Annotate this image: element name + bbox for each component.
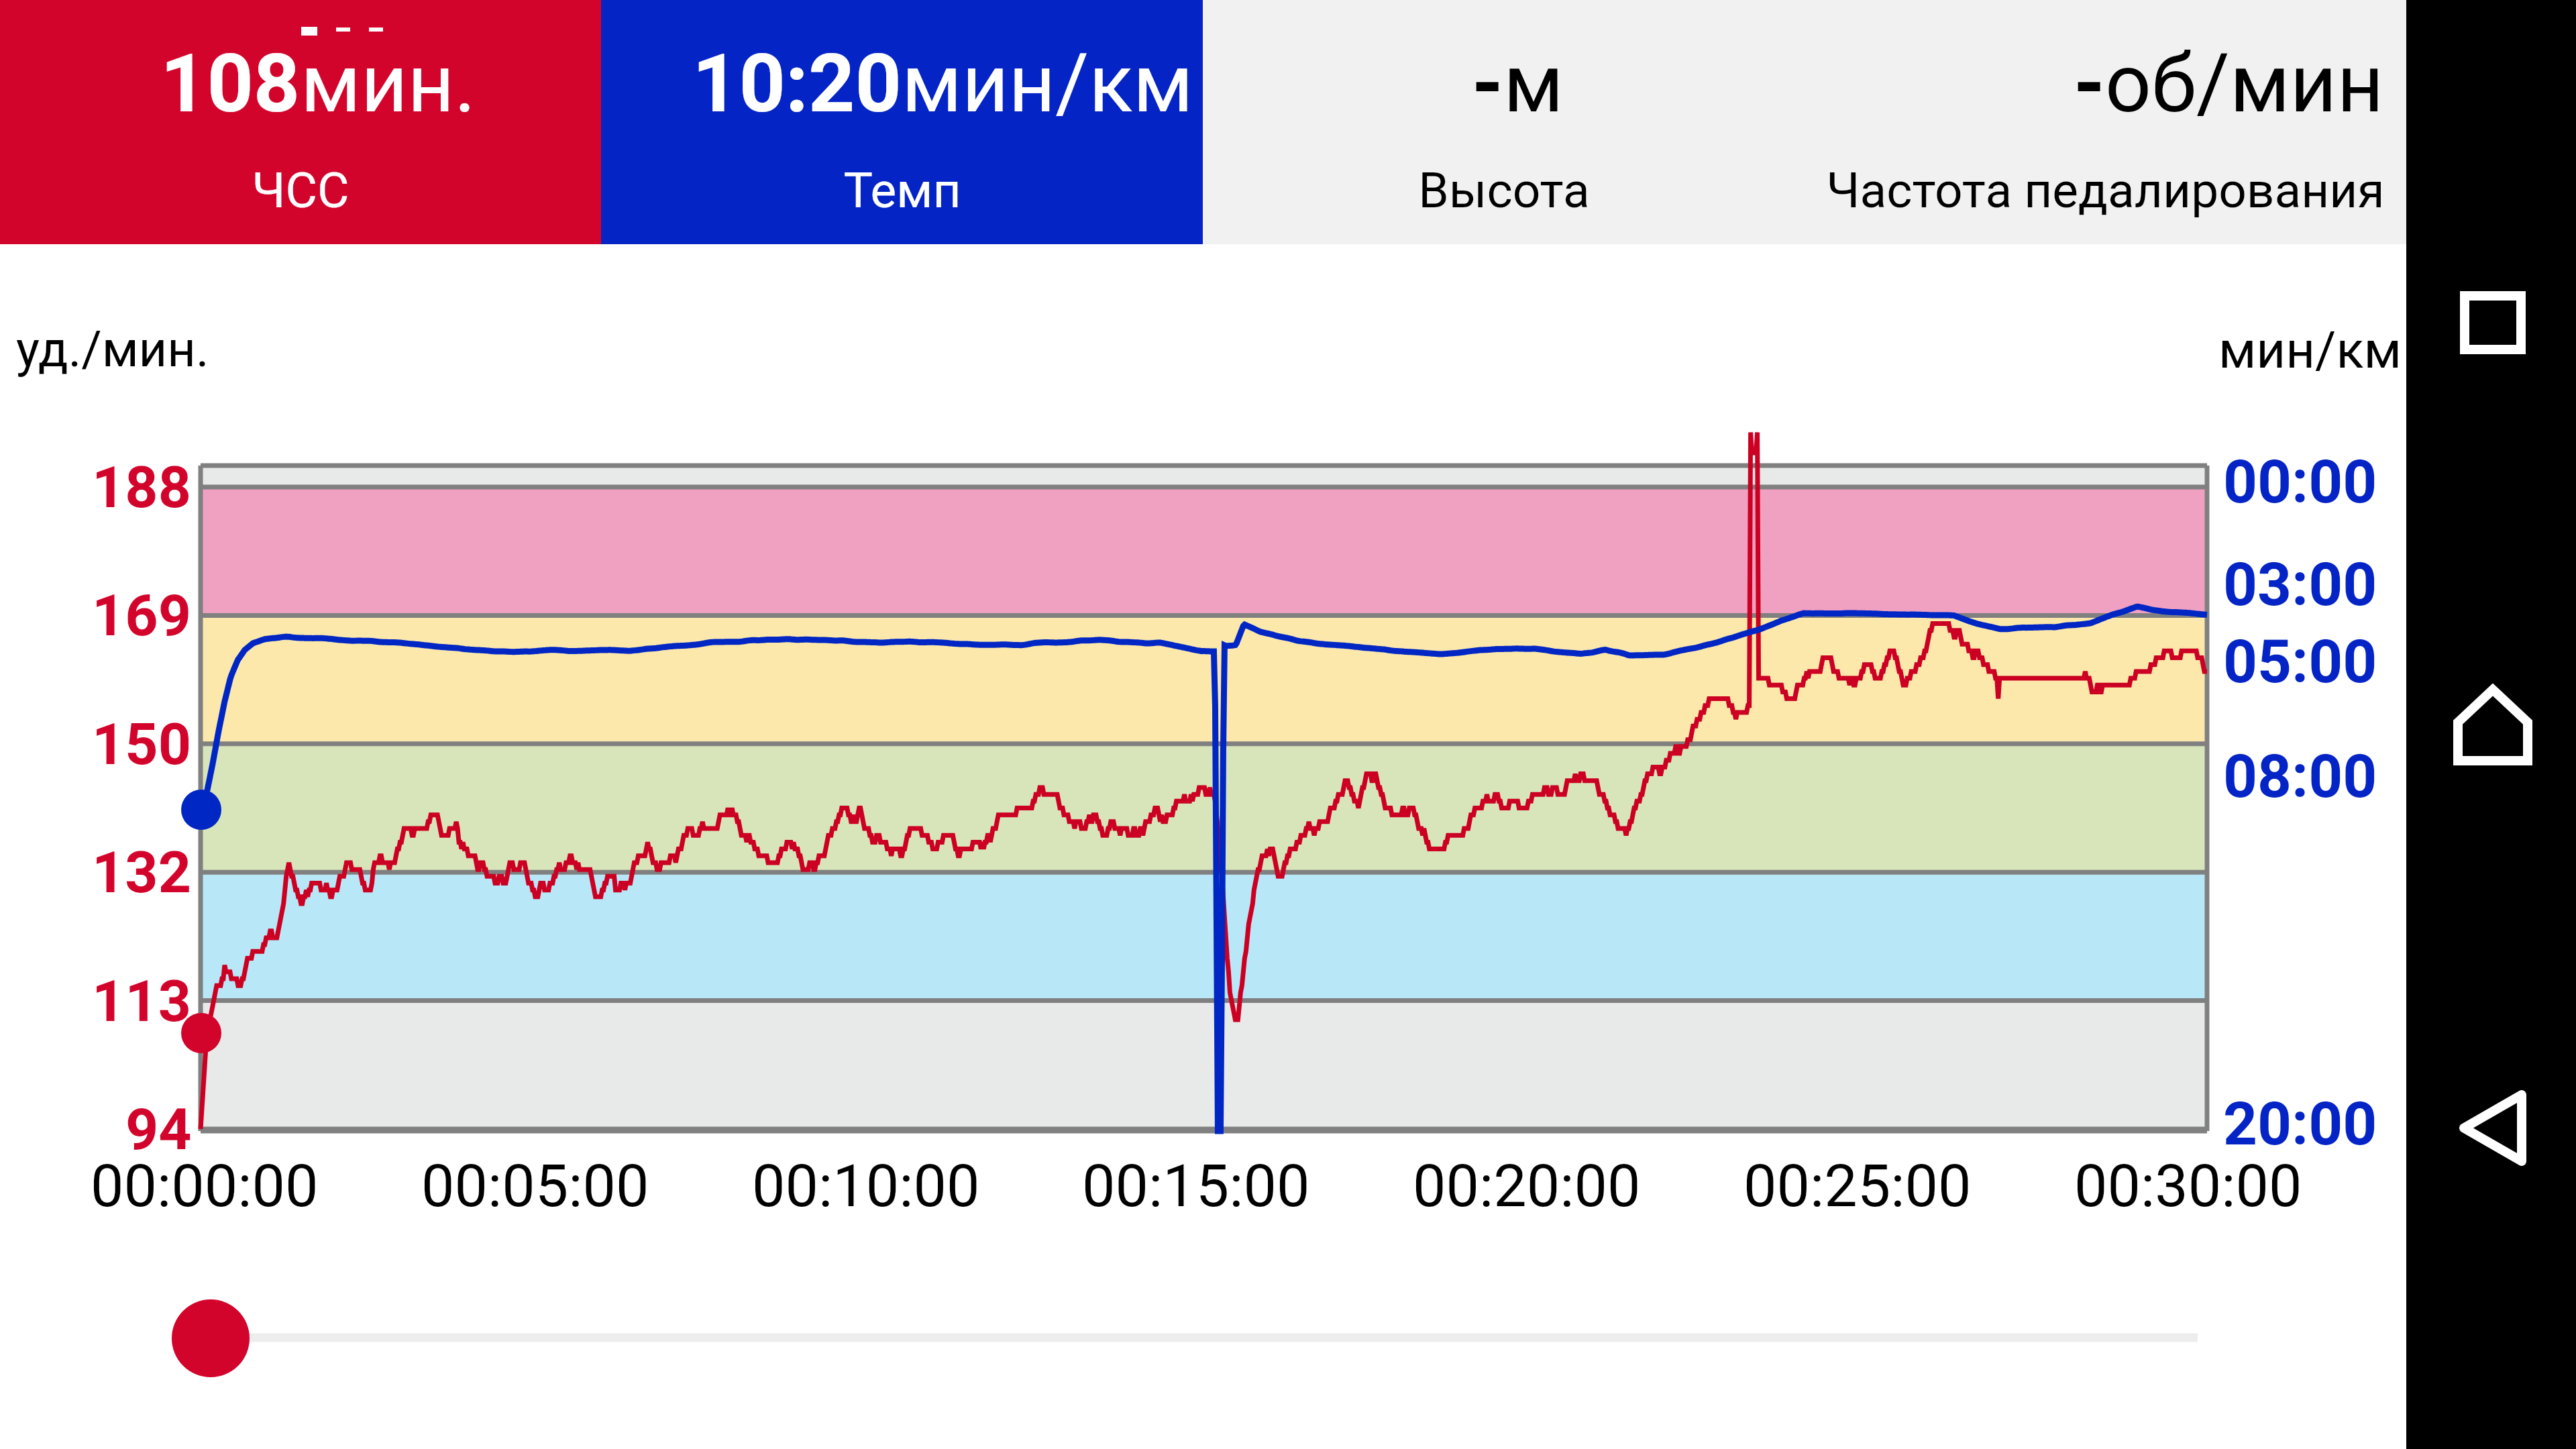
staticText: мин/км xyxy=(2218,320,2402,380)
staticText: 113 xyxy=(92,967,192,1035)
staticText: 00:00:00 xyxy=(91,1151,319,1220)
button[interactable]: Recents xyxy=(2429,259,2557,386)
staticText: 94 xyxy=(125,1095,192,1163)
staticText: 132 xyxy=(92,839,192,906)
staticText: 169 xyxy=(92,582,192,649)
staticText: 00:30:00 xyxy=(2074,1151,2302,1220)
staticText: м xyxy=(1503,36,1564,131)
staticText: мин. xyxy=(301,36,476,131)
staticText: 108 xyxy=(160,36,301,131)
staticText: Высота xyxy=(1418,162,1590,219)
staticText: 188 xyxy=(92,453,192,521)
staticText: 20:00 xyxy=(2223,1089,2377,1159)
staticText: 00:10:00 xyxy=(752,1151,980,1220)
staticText: Частота педалирования xyxy=(1826,162,2385,219)
staticText: ЧСС xyxy=(252,162,350,219)
staticText: об/мин xyxy=(2105,36,2384,131)
button[interactable]: 10:20 xyxy=(601,0,1203,244)
staticText: - xyxy=(2074,36,2105,131)
staticText: 00:20:00 xyxy=(1413,1151,1641,1220)
staticText: 150 xyxy=(92,710,192,778)
staticText: 00:15:00 xyxy=(1082,1151,1310,1220)
staticText: - xyxy=(1472,36,1503,131)
staticText: 10:20 xyxy=(692,36,902,131)
staticText: Темп xyxy=(843,162,961,219)
button[interactable]: - xyxy=(1203,0,1805,244)
staticText: мин/км xyxy=(902,36,1193,131)
button[interactable]: Home xyxy=(2429,661,2557,789)
staticText: 05:00 xyxy=(2223,627,2377,696)
staticText: 08:00 xyxy=(2223,741,2377,811)
staticText: 00:05:00 xyxy=(421,1151,649,1220)
button[interactable]: Seek position xyxy=(161,1288,2254,1389)
button[interactable]: - xyxy=(1805,0,2406,244)
staticText: уд./мин. xyxy=(16,320,209,378)
staticText: 03:00 xyxy=(2223,549,2377,619)
button[interactable]: 108 xyxy=(0,0,601,244)
button[interactable]: Back xyxy=(2429,1064,2557,1191)
staticText: 00:25:00 xyxy=(1743,1151,1972,1220)
staticText: 00:00 xyxy=(2223,447,2377,517)
